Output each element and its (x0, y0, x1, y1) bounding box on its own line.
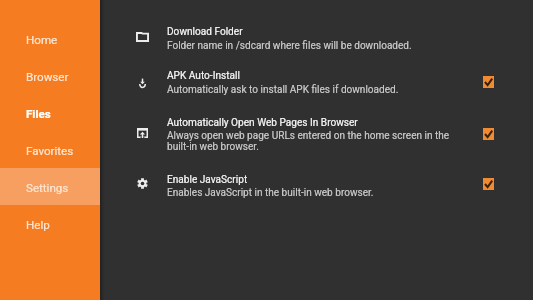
button[interactable] (105, 165, 525, 201)
staticText: Home (26, 33, 58, 47)
button[interactable]: Files (0, 95, 100, 132)
staticText: Files (26, 107, 51, 121)
staticText: Help (26, 218, 50, 232)
staticText: Folder name in /sdcard where files will … (167, 40, 412, 52)
button[interactable] (105, 61, 525, 97)
staticText: Automatically ask to install APK files i… (167, 84, 399, 96)
other: Automatically Open Web Pages In Browser (137, 128, 148, 138)
staticText: built-in web browser. (167, 141, 259, 153)
button[interactable]: Toggle Enable JavaScript (483, 178, 494, 190)
button[interactable]: Browser (0, 58, 100, 95)
staticText: Settings (26, 181, 69, 195)
staticText: Enable JavaScript (167, 174, 248, 186)
button[interactable]: Help (0, 206, 100, 243)
button[interactable]: Toggle APK Auto-Install (483, 76, 494, 88)
other: Enable JavaScript (137, 178, 148, 189)
button[interactable] (105, 17, 525, 53)
button[interactable]: Favorites (0, 132, 100, 169)
other: Download Folder (136, 32, 149, 42)
staticText: Enables JavaScript in the built-in web b… (167, 187, 374, 199)
staticText: Automatically Open Web Pages In Browser (167, 117, 358, 129)
button[interactable]: Home (0, 21, 100, 58)
other: APK Auto-Install (137, 78, 148, 88)
staticText: Always open web page URLs entered on the… (167, 130, 450, 142)
staticText: Download Folder (167, 26, 243, 38)
button[interactable] (105, 108, 525, 156)
staticText: Favorites (26, 144, 74, 158)
staticText: APK Auto-Install (167, 70, 240, 82)
button[interactable]: Settings (0, 169, 100, 206)
staticText: Browser (26, 70, 69, 84)
button[interactable]: Toggle Automatically Open Web Pages In B… (483, 128, 494, 140)
